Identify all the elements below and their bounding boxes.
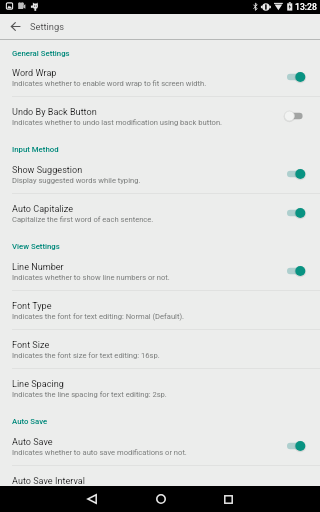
staticText: Input Method xyxy=(12,145,59,154)
button[interactable]: Back xyxy=(78,486,105,512)
button[interactable]: Navigate up xyxy=(0,14,30,39)
button[interactable]: Line Spacing xyxy=(0,369,320,408)
staticText: Show Suggestion xyxy=(12,165,83,176)
staticText: Indicates the font for text editing: Nor… xyxy=(12,312,185,321)
button[interactable]: Auto Save Interval xyxy=(0,466,320,486)
button[interactable]: Recent apps xyxy=(215,486,242,512)
staticText: Indicates whether to auto save modificat… xyxy=(12,448,187,457)
staticText: General Settings xyxy=(12,49,70,58)
staticText: Indicates whether to show line numbers o… xyxy=(12,273,170,282)
button[interactable]: Show Suggestion xyxy=(0,155,320,194)
button[interactable]: Auto Save xyxy=(0,427,320,466)
staticText: Indicates the font size for text editing… xyxy=(12,351,160,360)
staticText: 13:28 xyxy=(295,2,317,12)
button[interactable]: Font Size xyxy=(0,330,320,369)
staticText: Font Size xyxy=(12,340,50,351)
staticText: Font Type xyxy=(12,301,52,312)
staticText: Auto Save xyxy=(12,437,53,448)
button[interactable]: Undo By Back Button xyxy=(0,97,320,136)
staticText: Line Spacing xyxy=(12,379,64,390)
staticText: Indicates whether to undo last modificat… xyxy=(12,118,223,127)
staticText: View Settings xyxy=(12,242,60,251)
staticText: Auto Save xyxy=(12,417,48,426)
button[interactable]: Line Number xyxy=(0,252,320,291)
button[interactable]: Home xyxy=(147,486,174,512)
staticText: Auto Save Interval xyxy=(12,476,85,486)
button[interactable]: Word Wrap xyxy=(0,58,320,97)
staticText: Line Number xyxy=(12,262,64,273)
staticText: Auto Capitalize xyxy=(12,204,74,215)
staticText: Capitalize the first word of each senten… xyxy=(12,215,154,224)
staticText: Display suggested words while typing. xyxy=(12,176,141,185)
staticText: Word Wrap xyxy=(12,68,57,79)
staticText: Settings xyxy=(30,21,64,32)
staticText: Indicates the line spacing for text edit… xyxy=(12,390,167,399)
button[interactable]: Font Type xyxy=(0,291,320,330)
staticText: Undo By Back Button xyxy=(12,107,97,118)
staticText: Indicates whether to enable word wrap to… xyxy=(12,79,207,88)
button[interactable]: Auto Capitalize xyxy=(0,194,320,233)
